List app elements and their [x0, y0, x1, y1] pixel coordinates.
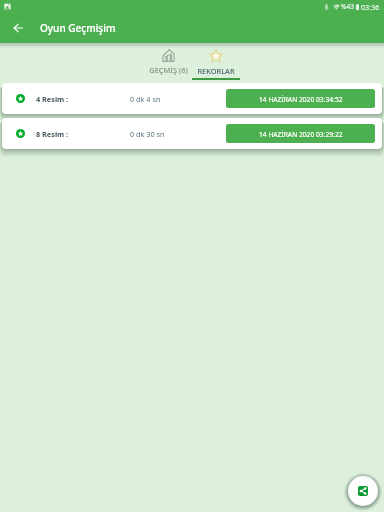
staticText: 0 dk 4 sn	[130, 94, 161, 104]
button[interactable]: REKORLAR	[192, 46, 240, 83]
staticText: 8 Resim :	[36, 129, 69, 139]
button[interactable]: 8 Resim :	[2, 118, 382, 149]
staticText: 0 dk 30 sn	[130, 129, 165, 139]
staticText: %43	[341, 2, 355, 11]
button[interactable]: 4 Resim :	[2, 83, 382, 114]
staticText: 14 HAZİRAN 2020 03:29:22	[259, 130, 343, 139]
button[interactable]: 14 HAZİRAN 2020 03:29:22	[226, 124, 375, 143]
staticText: GEÇMİŞ (6)	[149, 65, 188, 75]
button[interactable]: 14 HAZİRAN 2020 03:34:52	[226, 89, 375, 108]
staticText: REKORLAR	[197, 66, 235, 76]
staticText: 4 Resim :	[36, 94, 69, 104]
button[interactable]: Share	[348, 476, 378, 506]
staticText: 03:36	[361, 2, 380, 12]
staticText: 14 HAZİRAN 2020 03:34:52	[259, 95, 343, 104]
button[interactable]: GEÇMİŞ (6)	[144, 46, 192, 83]
button[interactable]: Back	[3, 13, 33, 43]
staticText: Oyun Geçmişim	[40, 21, 116, 35]
